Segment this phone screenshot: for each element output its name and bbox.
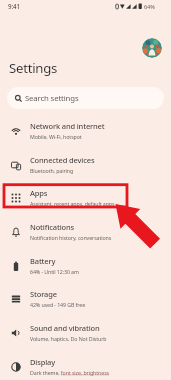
staticText: Assistant, recent apps, default apps <box>30 200 115 207</box>
staticText: Connected devices <box>30 155 95 165</box>
staticText: Notification history, conversations <box>30 234 112 241</box>
button[interactable]: Storage <box>0 282 171 315</box>
button[interactable]: Apps <box>0 181 171 214</box>
button[interactable]: Sound and vibration <box>0 316 171 349</box>
button[interactable]: Display <box>0 350 171 380</box>
staticText: Sound and vibration <box>30 323 100 333</box>
staticText: Search settings <box>25 93 79 104</box>
staticText: Notifications <box>30 222 74 232</box>
staticText: 64% - Until 12:30 am <box>30 268 79 275</box>
button[interactable]: Notifications <box>0 215 171 248</box>
staticText: 64% <box>144 3 155 11</box>
staticText: Bluetooth, pairing <box>30 167 74 174</box>
button[interactable]: Connected devices <box>0 148 171 181</box>
staticText: Volume, haptics, Do Not Disturb <box>30 335 107 342</box>
button[interactable]: Network and internet <box>0 114 171 147</box>
button[interactable]: Battery <box>0 249 171 282</box>
button[interactable]: Search settings <box>7 87 164 109</box>
staticText: Battery <box>30 256 56 266</box>
staticText: Mobile, Wi-Fi, hotspot <box>30 133 82 140</box>
staticText: Storage <box>30 289 57 299</box>
staticText: 42% used - 149 GB free <box>30 301 86 308</box>
button[interactable] <box>142 38 162 58</box>
staticText: 9:41 <box>8 2 20 10</box>
staticText: Network and internet <box>30 121 105 131</box>
staticText: Display <box>30 357 56 367</box>
staticText: Apps <box>30 188 48 198</box>
staticText: Settings <box>9 59 58 77</box>
staticText: Dark theme, font size, brightness <box>30 369 110 376</box>
